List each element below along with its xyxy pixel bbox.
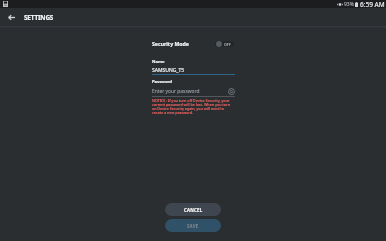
staticText: SETTINGS (24, 13, 54, 22)
staticText: Enter your password (152, 88, 200, 95)
staticText: CANCEL (184, 207, 203, 213)
staticText: 93% (344, 1, 354, 8)
staticText: Password (152, 79, 172, 85)
staticText: SAVE (187, 223, 199, 229)
button[interactable]: CANCEL (165, 203, 221, 216)
staticText: Name (152, 59, 165, 65)
staticText: NOTICE : If you turn off Device Security… (152, 98, 235, 115)
button[interactable]: Back (0, 8, 22, 26)
staticText: OFF (224, 42, 231, 47)
button[interactable]: Show password (228, 88, 235, 95)
staticText: Security Mode (152, 40, 189, 47)
button[interactable]: SAVE (165, 219, 221, 232)
staticText: 6:59 AM (360, 0, 385, 8)
staticText: SAMSUNG_T5 (152, 67, 185, 74)
button[interactable]: OFF (215, 41, 234, 47)
